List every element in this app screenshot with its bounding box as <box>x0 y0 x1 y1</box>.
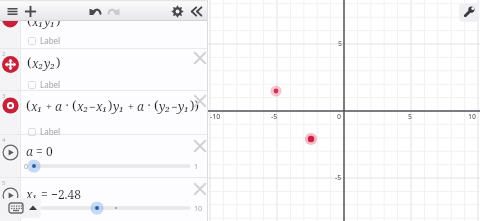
button[interactable]: Graph settings <box>459 3 478 22</box>
staticText: · ( <box>144 96 159 114</box>
button[interactable]: Delete <box>192 50 208 66</box>
staticText: x₁ <box>31 98 43 114</box>
staticText: 10 <box>468 112 477 122</box>
button[interactable]: Undo <box>86 2 105 21</box>
staticText: ) <box>56 11 61 29</box>
staticText: = 0 <box>33 143 53 159</box>
button[interactable]: Label <box>28 79 61 90</box>
button[interactable]: Delete <box>192 181 208 197</box>
button[interactable]: Collapse panel <box>186 2 205 21</box>
button[interactable]: Label <box>28 35 61 46</box>
staticText: 5 <box>408 112 413 122</box>
staticText: 5 <box>338 39 343 49</box>
button[interactable]: Delete <box>192 93 208 109</box>
staticText: + <box>43 99 55 114</box>
staticText: − <box>171 99 178 114</box>
staticText: y₁ <box>44 13 56 29</box>
staticText: + <box>125 99 137 114</box>
staticText: y₂ <box>159 98 171 114</box>
staticText: x₂ <box>77 98 89 114</box>
staticText: 5 <box>2 179 6 187</box>
staticText: x₁ <box>32 13 44 29</box>
staticText: 0 <box>337 112 342 122</box>
staticText: ) <box>56 53 61 71</box>
button[interactable]: Settings <box>168 2 187 21</box>
staticText: 1 <box>194 162 199 172</box>
button[interactable]: Expression 3 style <box>1 96 20 115</box>
staticText: 0 <box>24 162 29 172</box>
staticText: y₁ <box>113 98 125 114</box>
staticText: = −2.48 <box>38 186 82 202</box>
button[interactable]: Delete <box>192 138 208 154</box>
staticText: ( <box>27 11 32 29</box>
button[interactable]: Menu <box>3 2 22 21</box>
staticText: y₂ <box>44 55 56 71</box>
staticText: x₁ <box>26 186 38 202</box>
staticText: ( <box>26 96 31 114</box>
staticText: -5 <box>335 173 342 183</box>
button[interactable]: Redo <box>104 2 123 21</box>
staticText: Label <box>40 35 61 46</box>
button[interactable]: Label <box>28 126 61 137</box>
staticText: 2 <box>2 50 6 58</box>
staticText: y₁ <box>178 98 190 114</box>
staticText: x₂ <box>32 55 44 71</box>
staticText: x₁ <box>96 98 108 114</box>
staticText: a <box>55 98 62 114</box>
button[interactable]: Add <box>21 2 40 21</box>
staticText: Label <box>40 79 61 90</box>
staticText: a <box>137 98 144 114</box>
staticText: − <box>89 99 96 114</box>
staticText: -5 <box>271 112 278 122</box>
button[interactable]: Play slider <box>1 186 20 205</box>
staticText: 4 <box>2 136 6 144</box>
staticText: -10 <box>210 112 221 122</box>
staticText: ( <box>27 53 32 71</box>
staticText: 10 <box>194 204 203 214</box>
staticText: )) <box>190 96 199 114</box>
button[interactable]: Expression 2 style <box>1 55 20 74</box>
staticText: · ( <box>62 96 77 114</box>
button[interactable]: Show keyboard <box>2 198 41 218</box>
button[interactable]: Play slider <box>1 143 20 162</box>
staticText: Label <box>40 126 61 137</box>
staticText: a <box>26 143 33 159</box>
staticText: ) <box>108 96 113 114</box>
staticText: 3 <box>2 92 6 100</box>
